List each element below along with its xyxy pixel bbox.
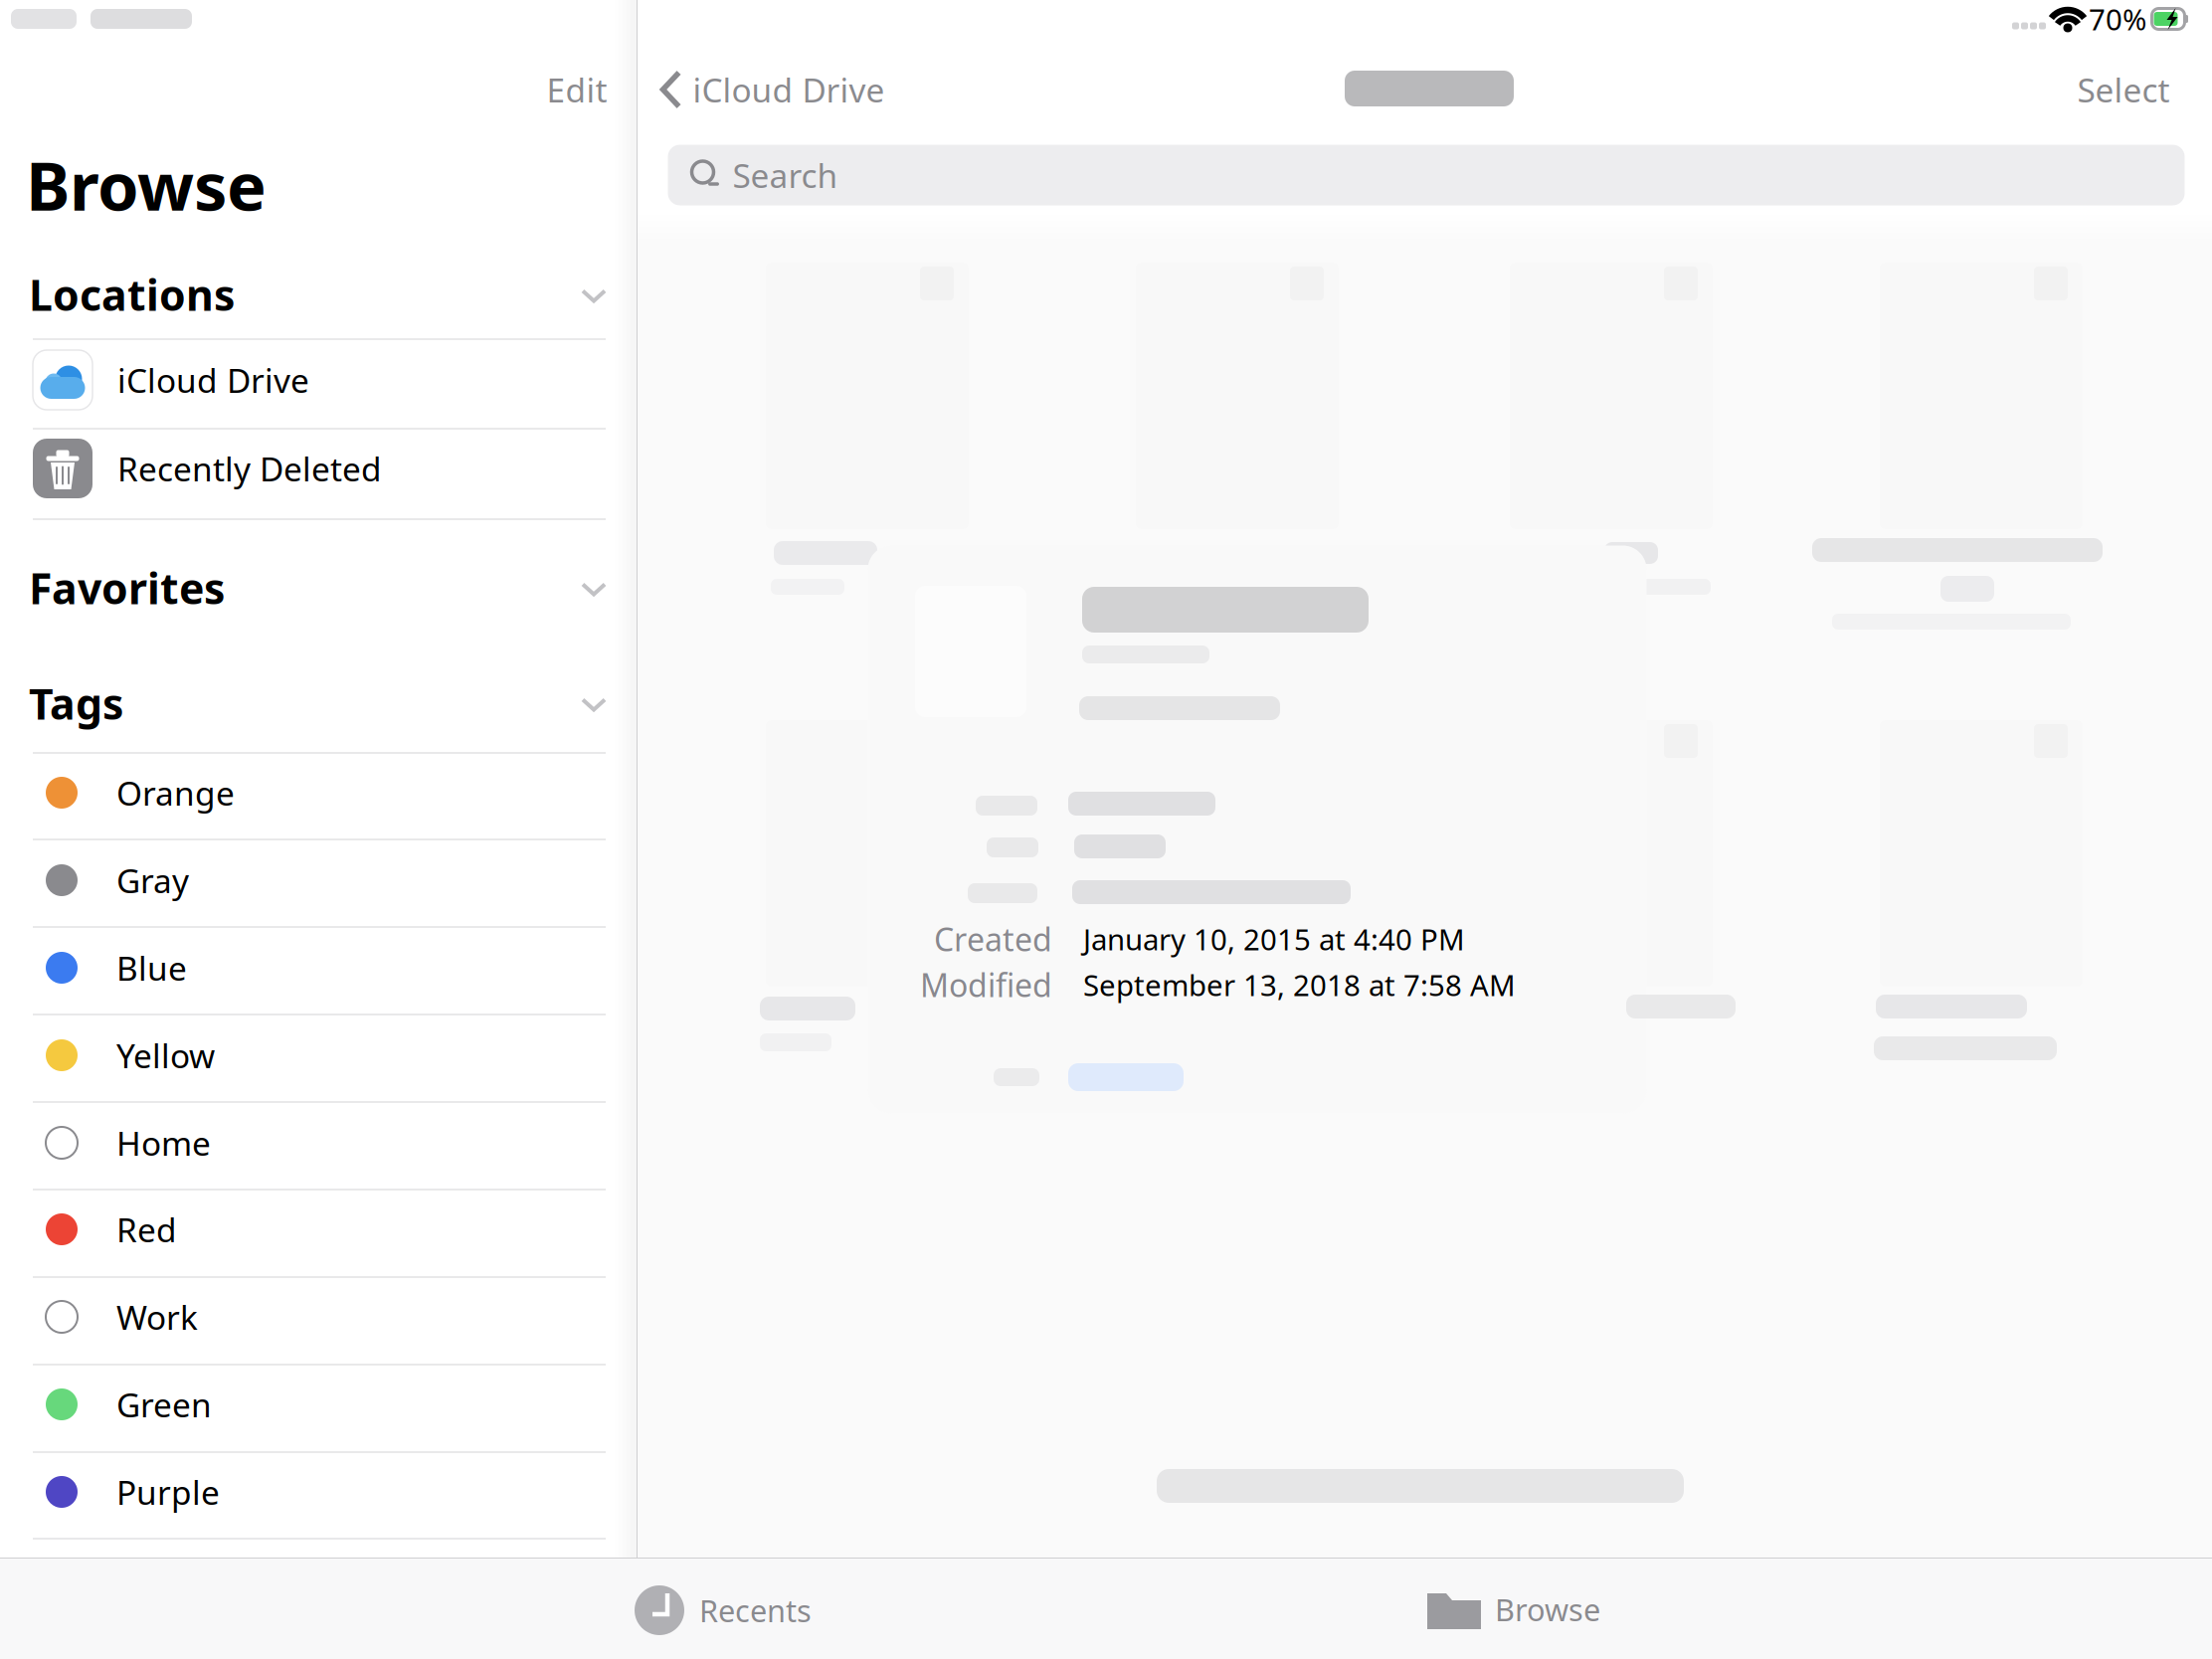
button[interactable]: Collapse Tags (565, 682, 623, 729)
staticText: Tags (29, 675, 123, 731)
button[interactable]: Orange (0, 751, 637, 834)
button[interactable]: Select (2061, 54, 2186, 126)
button[interactable]: iCloud Drive (659, 54, 897, 126)
staticText: 70% (2089, 0, 2146, 38)
button[interactable]: Recents (619, 1567, 828, 1653)
staticText: Blue (116, 946, 187, 990)
staticText: Gray (116, 858, 189, 902)
button[interactable]: Blue (0, 926, 637, 1010)
button[interactable]: Gray (0, 838, 637, 922)
staticText: Browse (1495, 1589, 1600, 1629)
button[interactable]: Green (0, 1363, 637, 1446)
staticText: Red (116, 1207, 177, 1251)
staticText: Select (2077, 68, 2170, 112)
staticText: iCloud Drive (117, 358, 309, 402)
staticText: iCloud Drive (693, 68, 885, 112)
staticText: Locations (29, 266, 235, 323)
button[interactable]: Yellow (0, 1014, 637, 1097)
button[interactable]: Purple (0, 1450, 637, 1534)
button[interactable]: Work (0, 1275, 637, 1359)
staticText: Orange (116, 771, 235, 815)
staticText: Modified (920, 964, 1052, 1006)
staticText: Recents (699, 1590, 812, 1630)
staticText: Created (934, 918, 1052, 960)
staticText: Search (733, 153, 838, 197)
staticText: September 13, 2018 at 7:58 AM (1083, 965, 1516, 1004)
button[interactable]: Edit (531, 52, 623, 128)
button[interactable]: Recently Deleted (0, 426, 637, 511)
button[interactable]: iCloud Drive (0, 337, 637, 423)
button[interactable]: Collapse Favorites (565, 566, 623, 613)
staticText: Favorites (29, 560, 225, 616)
button[interactable]: Home (0, 1101, 637, 1185)
staticText: Work (116, 1295, 198, 1339)
staticText: January 10, 2015 at 4:40 PM (1083, 920, 1465, 958)
button[interactable]: Browse (1411, 1570, 1616, 1648)
button[interactable]: Collapse Locations (565, 273, 623, 320)
staticText: Browse (26, 141, 267, 229)
staticText: Yellow (116, 1033, 215, 1077)
staticText: Edit (547, 68, 607, 112)
staticText: Home (116, 1121, 211, 1165)
button[interactable]: Red (0, 1188, 637, 1271)
staticText: Purple (116, 1470, 220, 1514)
staticText: Recently Deleted (117, 446, 382, 491)
staticText: Green (116, 1382, 212, 1426)
